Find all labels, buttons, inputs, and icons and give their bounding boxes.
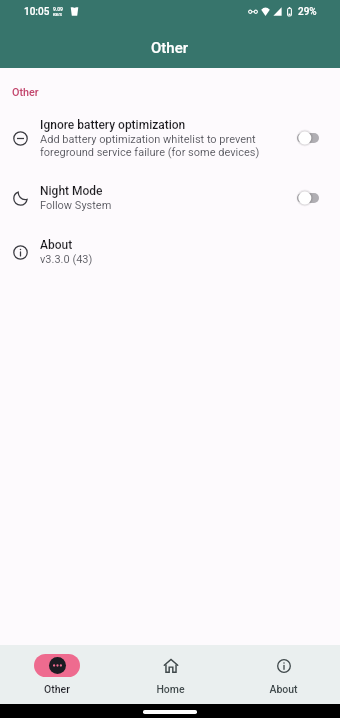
staticText: v3.3.0 (43)	[40, 253, 93, 266]
staticText: Night Mode	[40, 184, 103, 198]
staticText: About	[269, 683, 298, 695]
staticText: KB/S	[53, 12, 63, 17]
other: Home	[164, 659, 178, 673]
staticText: 29%	[298, 6, 317, 18]
other: Night Mode	[13, 191, 28, 206]
other: About	[13, 245, 28, 260]
button[interactable]: About	[0, 225, 340, 279]
staticText: 10:05	[24, 6, 50, 18]
staticText: Ignore battery optimization	[40, 118, 186, 132]
other: Other	[49, 657, 66, 674]
button[interactable]: Toggle	[297, 189, 319, 207]
staticText: Other	[151, 39, 189, 57]
button[interactable]: Home	[114, 645, 227, 704]
staticText: Home	[156, 683, 185, 695]
staticText: Other	[12, 86, 39, 99]
button[interactable]: Other	[0, 645, 114, 704]
button[interactable]: Toggle	[297, 129, 319, 147]
other: Ignore battery optimization	[13, 131, 28, 146]
button[interactable]: About	[227, 645, 340, 704]
staticText: 9.09	[53, 6, 63, 12]
other: About	[277, 659, 291, 673]
button[interactable]: Ignore battery optimization	[0, 105, 340, 171]
staticText: About	[40, 238, 73, 252]
staticText: Other	[44, 683, 70, 695]
staticText: Add battery optimization whitelist to pr…	[40, 133, 262, 158]
button[interactable]: Night Mode	[0, 171, 340, 225]
staticText: Follow System	[40, 199, 112, 212]
